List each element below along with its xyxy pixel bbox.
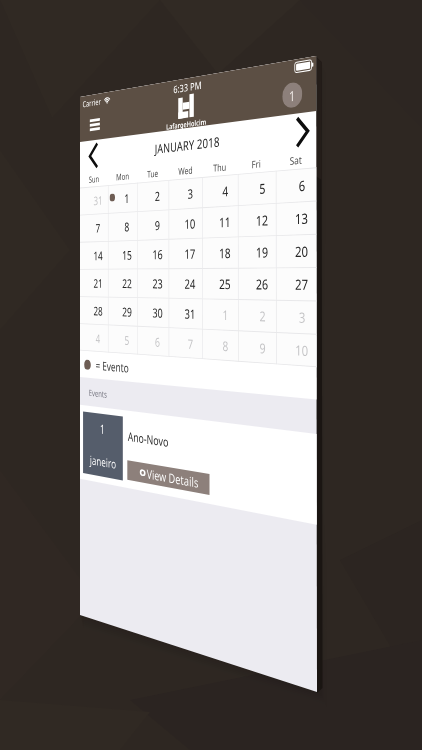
staticText: 9: [298, 300, 307, 320]
staticText: = Evento: [30, 334, 91, 354]
button[interactable]: 4: [213, 117, 267, 152]
button[interactable]: 24: [159, 222, 213, 257]
button[interactable]: 5: [267, 117, 321, 152]
button[interactable]: 17: [159, 187, 213, 222]
staticText: View Details: [122, 460, 207, 480]
button[interactable]: 15: [53, 187, 106, 222]
button[interactable]: 1: [53, 117, 106, 152]
button[interactable]: 7: [159, 292, 213, 327]
staticText: Wed: [175, 100, 198, 115]
button[interactable]: 9: [267, 292, 321, 327]
button[interactable]: 22: [53, 222, 106, 257]
staticText: JANUARY 2018: [136, 68, 240, 88]
button[interactable]: 8: [53, 152, 106, 187]
staticText: 8: [83, 160, 92, 180]
button[interactable]: 23: [106, 222, 159, 257]
staticText: 22: [79, 230, 97, 250]
button[interactable]: View Details: [88, 458, 224, 482]
button[interactable]: 30: [106, 257, 159, 292]
button[interactable]: 3: [159, 117, 213, 152]
button[interactable]: 8: [213, 292, 267, 327]
staticText: 7: [190, 300, 199, 320]
button[interactable]: 1: [213, 257, 267, 292]
staticText: 26: [293, 230, 311, 250]
staticText: 11: [239, 160, 257, 180]
staticText: 1: [83, 125, 92, 145]
staticText: 23: [132, 230, 150, 250]
staticText: 15: [79, 195, 97, 215]
button[interactable]: 9: [106, 152, 159, 187]
button[interactable]: 25: [213, 222, 267, 257]
button[interactable]: 10: [159, 152, 213, 187]
staticText: 2: [298, 265, 307, 285]
staticText: 2: [136, 125, 145, 145]
staticText: 25: [239, 230, 257, 250]
staticText: 1: [244, 265, 253, 285]
staticText: 29: [79, 265, 97, 285]
button[interactable]: 26: [267, 222, 321, 257]
button[interactable]: 6: [106, 292, 159, 327]
button[interactable]: 31: [159, 257, 213, 292]
button[interactable]: 5: [53, 292, 106, 327]
staticText: 5: [298, 125, 307, 145]
staticText: 19: [293, 195, 311, 215]
button[interactable]: 18: [213, 187, 267, 222]
button[interactable]: 12: [267, 152, 321, 187]
staticText: 3: [190, 125, 199, 145]
button[interactable]: 19: [267, 187, 321, 222]
staticText: 16: [132, 195, 150, 215]
button[interactable]: 2: [106, 117, 159, 152]
staticText: 24: [185, 230, 203, 250]
button[interactable]: 16: [106, 187, 159, 222]
button[interactable]: 11: [213, 152, 267, 187]
staticText: 6: [136, 300, 145, 320]
button[interactable]: 29: [53, 257, 106, 292]
button[interactable]: 2: [267, 257, 321, 292]
staticText: Mon: [68, 100, 92, 115]
staticText: 30: [132, 265, 150, 285]
staticText: 12: [293, 160, 311, 180]
staticText: Ano-Novo: [89, 418, 159, 438]
staticText: 10: [185, 160, 203, 180]
